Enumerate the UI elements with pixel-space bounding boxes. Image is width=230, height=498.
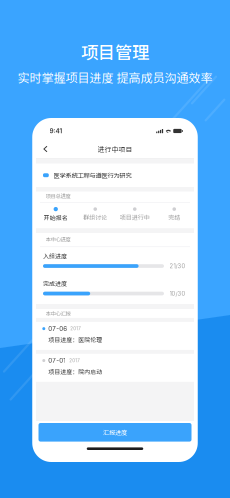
staticText: 2017 <box>69 358 79 363</box>
staticText: 实时掌握项目进度 提高成员沟通效率 <box>17 68 212 86</box>
staticText: 本中心汇报 <box>46 309 71 317</box>
button[interactable]: 医学系统工程与遵医行为研究 <box>36 163 194 187</box>
staticText: 9:41 <box>49 127 62 135</box>
staticText: 完成进度 <box>43 279 67 288</box>
button[interactable]: Back <box>39 142 52 156</box>
staticText: 开始报名 <box>44 213 68 222</box>
staticText: 进行中项目 <box>97 144 132 154</box>
staticText: 入组进度 <box>43 252 67 260</box>
staticText: 07-06 <box>48 325 67 332</box>
staticText: 群组讨论 <box>83 213 107 222</box>
staticText: 项目进度：院内启动 <box>48 367 102 376</box>
button[interactable]: 汇报进度 <box>38 423 191 442</box>
staticText: 2017 <box>70 326 80 331</box>
staticText: 07-01 <box>48 357 66 364</box>
staticText: 本中心进度 <box>46 235 71 243</box>
button[interactable]: 07-01 <box>36 354 194 382</box>
staticText: 10/30 <box>169 290 185 297</box>
staticText: 项目进度：医院伦理 <box>48 335 102 344</box>
button[interactable]: 07-06 <box>36 322 194 350</box>
staticText: 项目进行中 <box>120 213 150 222</box>
staticText: 医学系统工程与遵医行为研究 <box>54 171 132 180</box>
staticText: 项目管理 <box>81 39 149 64</box>
staticText: 项目总进度 <box>46 192 71 200</box>
staticText: 21/30 <box>169 262 185 269</box>
staticText: 汇报进度 <box>103 428 127 437</box>
staticText: 完结 <box>168 213 180 222</box>
